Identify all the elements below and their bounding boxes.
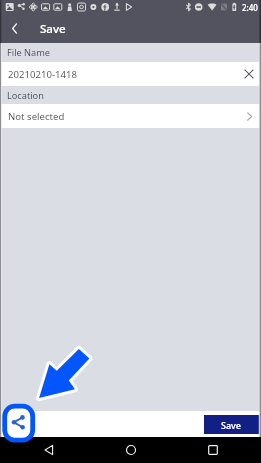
staticText: File Name — [7, 46, 50, 59]
button[interactable]: Home — [118, 437, 144, 463]
staticText: Not selected — [8, 110, 65, 123]
button[interactable]: Share — [0, 0, 261, 463]
staticText: 20210210-1418 — [8, 68, 77, 81]
button[interactable]: Recent apps — [200, 437, 226, 463]
button[interactable]: Clear file name — [241, 66, 257, 82]
button[interactable]: Back — [36, 437, 62, 463]
button[interactable]: Save — [204, 415, 259, 434]
staticText: Save — [40, 21, 66, 37]
staticText: 2:40 — [242, 2, 258, 13]
staticText: Location — [7, 89, 44, 102]
staticText: Save — [221, 419, 242, 431]
button[interactable]: Not selected — [0, 104, 261, 128]
button[interactable]: Navigate up — [0, 14, 29, 43]
